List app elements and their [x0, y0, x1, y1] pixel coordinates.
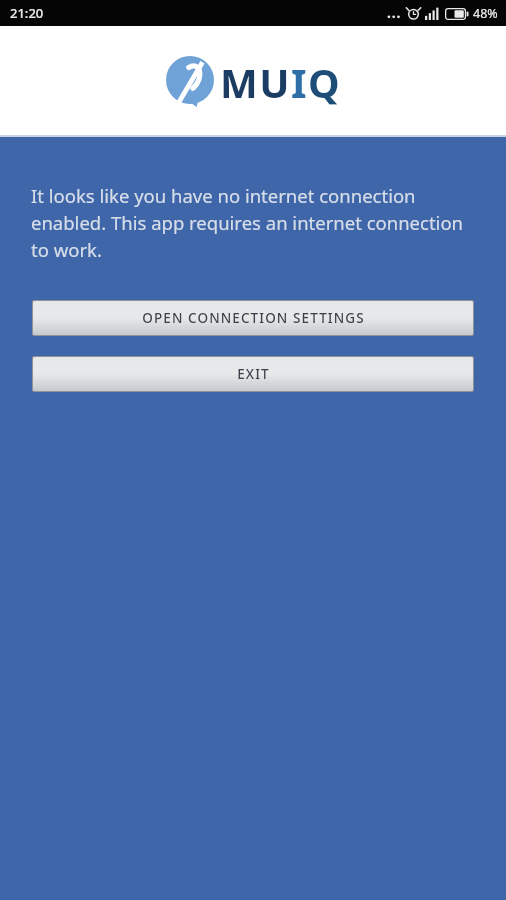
button[interactable]: EXIT — [33, 357, 473, 391]
staticText: 48% — [473, 5, 498, 22]
staticText: It looks like you have no internet conne… — [31, 183, 468, 263]
staticText: EXIT — [237, 365, 270, 383]
button[interactable]: OPEN CONNECTION SETTINGS — [33, 301, 473, 335]
staticText: 21:20 — [10, 4, 44, 22]
staticText: OPEN CONNECTION SETTINGS — [142, 309, 365, 327]
staticText: MUIQ — [220, 55, 342, 109]
